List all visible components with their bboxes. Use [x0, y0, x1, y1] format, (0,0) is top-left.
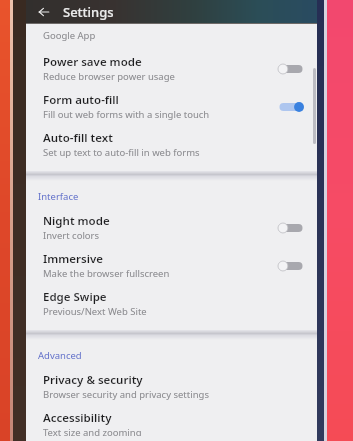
- button[interactable]: Back: [34, 2, 54, 22]
- staticText: Immersive: [43, 251, 103, 267]
- staticText: Accessibility: [43, 410, 112, 426]
- staticText: Invert colors: [43, 229, 100, 242]
- button[interactable]: Accessibility: [26, 406, 317, 441]
- staticText: Fill out web forms with a single touch: [43, 108, 210, 121]
- button[interactable]: On: [275, 97, 307, 117]
- button[interactable]: Edge Swipe: [26, 285, 317, 323]
- staticText: Night mode: [43, 213, 110, 229]
- button[interactable]: Off: [275, 59, 307, 79]
- staticText: Edge Swipe: [43, 289, 107, 305]
- staticText: Text size and zooming: [43, 426, 142, 436]
- staticText: Previous/Next Web Site: [43, 305, 147, 318]
- staticText: Interface: [38, 190, 79, 203]
- staticText: Power save mode: [43, 54, 142, 70]
- button[interactable]: Immersive: [26, 247, 317, 285]
- button[interactable]: Privacy & security: [26, 368, 317, 406]
- staticText: Advanced: [38, 349, 82, 362]
- button[interactable]: Off: [275, 256, 307, 276]
- staticText: Make the browser fullscreen: [43, 267, 170, 280]
- staticText: Form auto-fill: [43, 92, 119, 108]
- staticText: Auto-fill text: [43, 130, 113, 146]
- staticText: Reduce browser power usage: [43, 70, 175, 83]
- staticText: Privacy & security: [43, 372, 143, 388]
- staticText: Set up text to auto-fill in web forms: [43, 146, 200, 159]
- button[interactable]: Off: [275, 218, 307, 238]
- button[interactable]: Night mode: [26, 209, 317, 247]
- button[interactable]: Auto-fill text: [26, 126, 317, 164]
- button[interactable]: Power save mode: [26, 50, 317, 88]
- button[interactable]: Form auto-fill: [26, 88, 317, 126]
- staticText: Browser security and privacy settings: [43, 388, 209, 401]
- staticText: Settings: [63, 3, 114, 21]
- staticText: Google App: [43, 29, 96, 42]
